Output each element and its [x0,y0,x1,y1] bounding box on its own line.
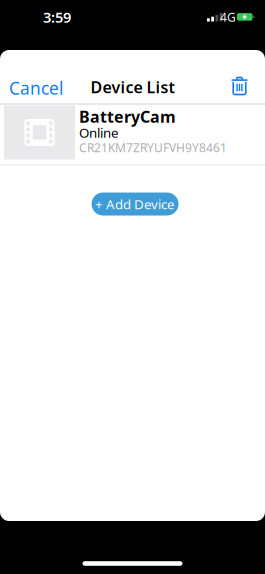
staticText: 3:59 [43,7,71,27]
staticText: Online [79,124,119,141]
button[interactable]: + Add Device [91,192,178,215]
staticText: Device List [90,76,174,98]
staticText: Cancel [9,76,63,99]
button[interactable]: Cancel [9,76,63,99]
staticText: 4G [220,9,236,25]
staticText: CR21KM7ZRYUFVH9Y8461 [79,139,227,155]
staticText: + Add Device [95,195,175,213]
staticText: BatteryCam [79,106,176,127]
button[interactable]: Delete devices [231,76,248,95]
button[interactable]: BatteryCam [0,104,265,165]
